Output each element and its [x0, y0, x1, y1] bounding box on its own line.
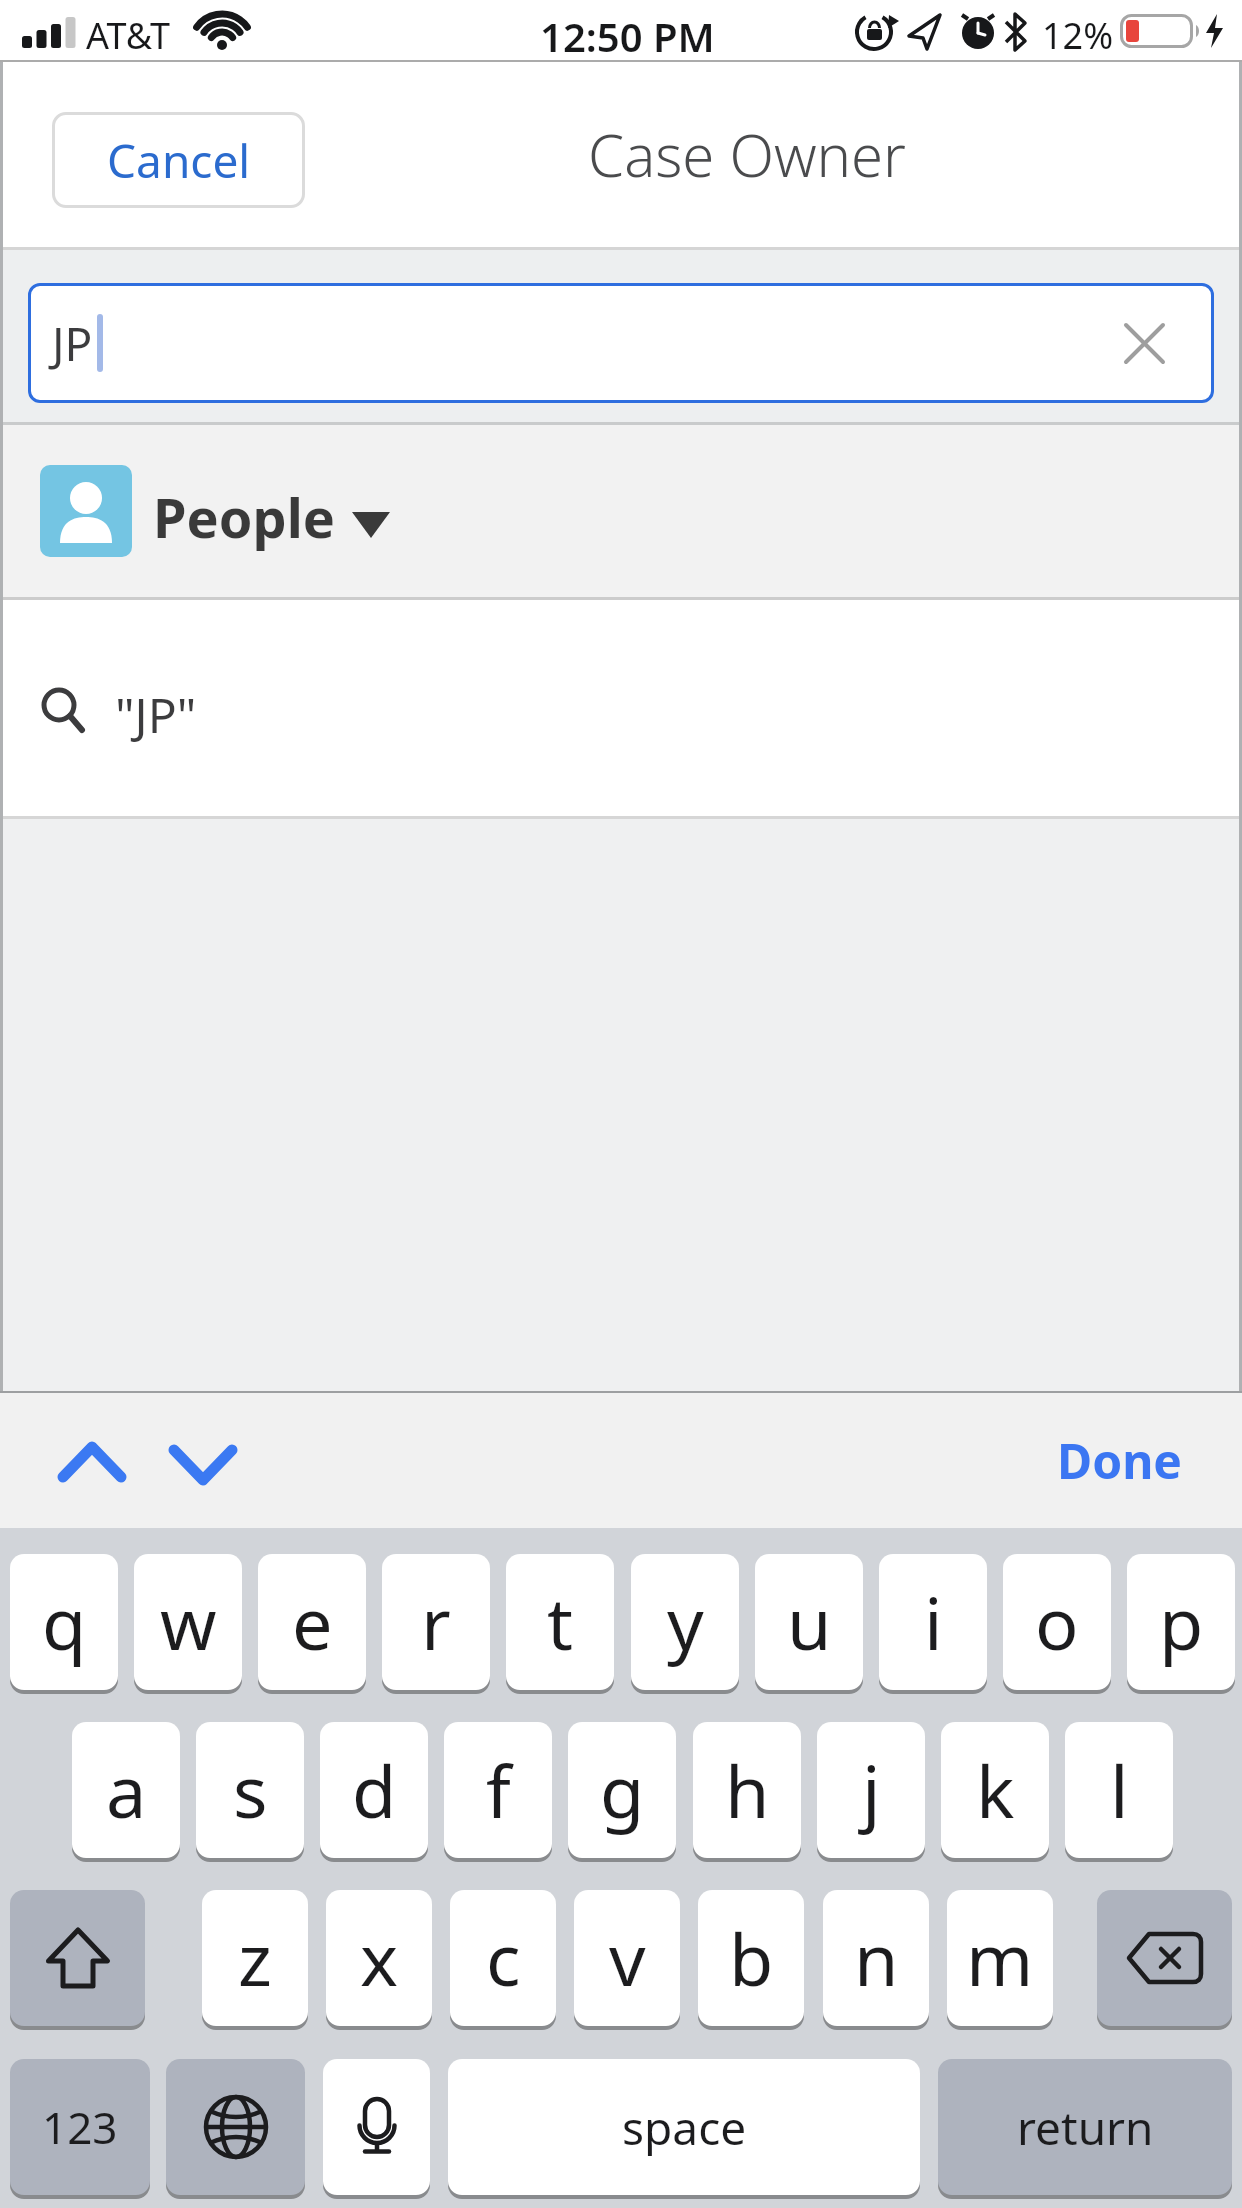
staticText: space — [622, 2096, 747, 2159]
staticText: 12:50 PM — [540, 9, 715, 63]
button[interactable]: space — [448, 2059, 920, 2195]
staticText: AT&T — [86, 11, 170, 60]
button[interactable]: x — [326, 1890, 432, 2026]
staticText: Cancel — [107, 129, 251, 192]
button[interactable]: y — [631, 1554, 739, 1690]
button[interactable]: e — [258, 1554, 366, 1690]
button[interactable] — [1097, 1890, 1232, 2026]
button[interactable]: h — [693, 1722, 801, 1858]
button[interactable]: t — [506, 1554, 614, 1690]
button[interactable]: a — [72, 1722, 180, 1858]
staticText: y — [667, 1573, 704, 1671]
button[interactable]: j — [817, 1722, 925, 1858]
button[interactable]: n — [823, 1890, 929, 2026]
staticText: z — [238, 1909, 272, 2007]
button[interactable]: z — [202, 1890, 308, 2026]
button[interactable]: Done — [1057, 1428, 1182, 1493]
staticText: r — [421, 1573, 451, 1671]
button[interactable]: o — [1003, 1554, 1111, 1690]
button[interactable] — [10, 1890, 145, 2026]
staticText: q — [42, 1573, 87, 1671]
button[interactable]: m — [947, 1890, 1053, 2026]
button[interactable]: 123 — [10, 2059, 150, 2195]
staticText: return — [1017, 2096, 1154, 2159]
staticText: u — [787, 1573, 832, 1671]
staticText: b — [729, 1909, 774, 2007]
button[interactable] — [172, 1447, 234, 1483]
staticText: JP — [52, 312, 93, 375]
button[interactable]: return — [938, 2059, 1232, 2195]
staticText: j — [862, 1741, 881, 1839]
staticText: Case Owner — [588, 115, 906, 194]
button[interactable]: q — [10, 1554, 118, 1690]
button[interactable]: u — [755, 1554, 863, 1690]
staticText: x — [360, 1909, 399, 2007]
staticText: k — [976, 1741, 1015, 1839]
staticText: d — [352, 1741, 397, 1839]
button[interactable] — [61, 1444, 123, 1480]
staticText: f — [486, 1741, 511, 1839]
button[interactable]: JP — [28, 283, 1214, 403]
staticText: People — [153, 480, 335, 554]
button[interactable]: i — [879, 1554, 987, 1690]
button[interactable]: v — [574, 1890, 680, 2026]
button[interactable]: "JP" — [0, 600, 1242, 816]
button[interactable]: l — [1065, 1722, 1173, 1858]
staticText: m — [966, 1909, 1034, 2007]
staticText: v — [609, 1909, 646, 2007]
button[interactable]: g — [568, 1722, 676, 1858]
button[interactable] — [166, 2059, 305, 2195]
button[interactable]: s — [196, 1722, 304, 1858]
staticText: 123 — [42, 2097, 118, 2157]
button[interactable]: p — [1127, 1554, 1235, 1690]
staticText: g — [600, 1741, 645, 1839]
staticText: Done — [1057, 1428, 1182, 1493]
staticText: l — [1110, 1741, 1129, 1839]
staticText: c — [486, 1909, 521, 2007]
button[interactable]: b — [698, 1890, 804, 2026]
button[interactable]: w — [134, 1554, 242, 1690]
button[interactable]: People — [0, 425, 1242, 597]
button[interactable]: r — [382, 1554, 490, 1690]
button[interactable]: d — [320, 1722, 428, 1858]
button[interactable]: Cancel — [52, 112, 305, 208]
staticText: a — [106, 1741, 147, 1839]
staticText: t — [547, 1573, 573, 1671]
staticText: i — [924, 1573, 943, 1671]
button[interactable]: f — [444, 1722, 552, 1858]
button[interactable]: c — [450, 1890, 556, 2026]
staticText: 12% — [1042, 11, 1114, 60]
staticText: n — [854, 1909, 899, 2007]
button[interactable] — [323, 2059, 430, 2195]
staticText: "JP" — [115, 682, 197, 747]
staticText: h — [725, 1741, 770, 1839]
staticText: w — [160, 1573, 217, 1671]
staticText: e — [292, 1573, 333, 1671]
staticText: p — [1159, 1573, 1204, 1671]
button[interactable]: k — [941, 1722, 1049, 1858]
staticText: s — [233, 1741, 268, 1839]
staticText: o — [1035, 1573, 1079, 1671]
